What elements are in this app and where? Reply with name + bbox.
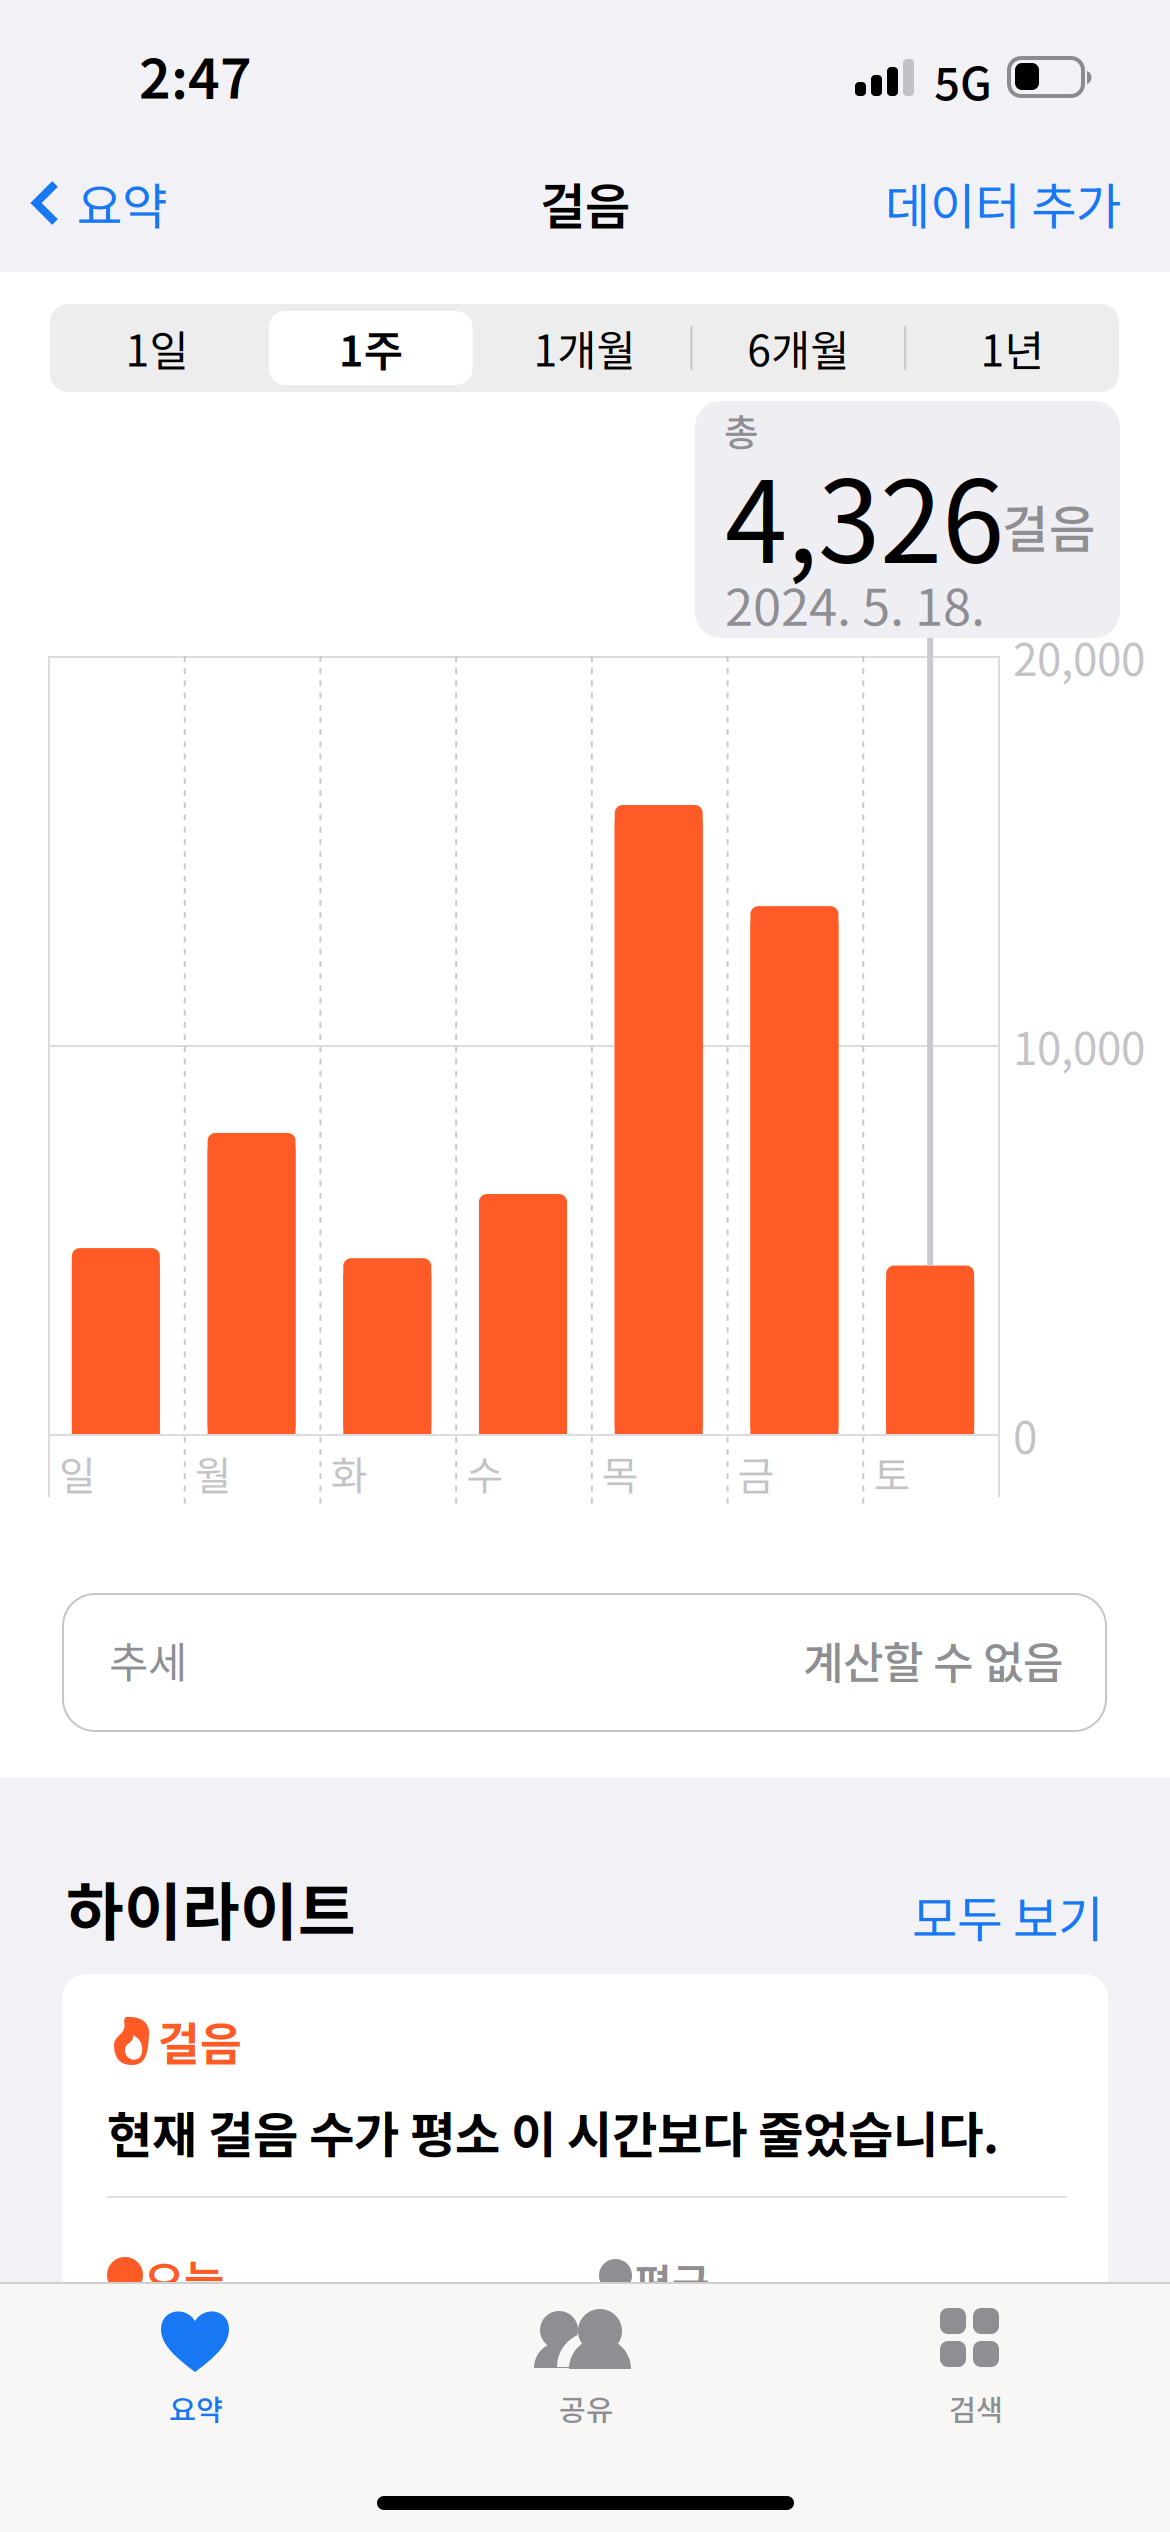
staticText: 1주 <box>339 317 403 379</box>
button[interactable]: 추세 <box>63 1594 1106 1731</box>
staticText: 걸음 <box>158 2008 242 2074</box>
staticText: 공유 <box>559 2387 613 2429</box>
button[interactable]: 데이터 추가 <box>863 148 1169 258</box>
button[interactable]: 요약 <box>0 2282 390 2450</box>
staticText: 검색 <box>949 2387 1003 2429</box>
button[interactable]: 1개월 <box>478 304 691 392</box>
staticText: 화 <box>330 1444 367 1502</box>
staticText: 2024. 5. 18. <box>725 567 985 640</box>
staticText: 하이라이트 <box>66 1862 356 1953</box>
staticText: 평균 <box>634 2251 710 2311</box>
staticText: 모두 보기 <box>912 1880 1103 1951</box>
staticText: 1개월 <box>533 317 635 379</box>
staticText: 금 <box>738 1444 775 1502</box>
staticText: 계산할 수 없음 <box>803 1628 1063 1692</box>
staticText: 5G <box>934 48 992 114</box>
staticText: 걸음 <box>1002 489 1096 562</box>
staticText: 요약 <box>77 167 167 239</box>
staticText: 0 <box>1013 1403 1037 1467</box>
staticText: 10,000 <box>1013 1014 1145 1078</box>
staticText: 일 <box>59 1444 96 1502</box>
button[interactable]: 공유 <box>390 2282 780 2450</box>
staticText: 월 <box>195 1444 232 1502</box>
button[interactable]: 1년 <box>905 304 1119 392</box>
button[interactable]: 모두 보기 <box>900 1868 1115 1963</box>
button[interactable]: 1일 <box>50 304 264 392</box>
staticText: 수 <box>466 1444 503 1502</box>
staticText: 1년 <box>981 317 1044 379</box>
staticText: 총 <box>724 403 758 457</box>
staticText: 요약 <box>169 2387 223 2429</box>
staticText: 토 <box>873 1444 910 1502</box>
button[interactable]: 요약 <box>0 148 189 258</box>
staticText: 목 <box>602 1444 639 1502</box>
button[interactable]: 걸음 <box>62 1974 1108 2314</box>
staticText: 1일 <box>125 317 188 379</box>
staticText: 걸음 <box>540 167 630 239</box>
staticText: 20,000 <box>1013 625 1145 689</box>
staticText: 2:47 <box>139 35 252 114</box>
staticText: 현재 걸음 수가 평소 이 시간보다 줄었습니다. <box>107 2096 999 2167</box>
staticText: 추세 <box>109 1629 187 1691</box>
staticText: 6개월 <box>747 317 849 379</box>
staticText: 4,326 <box>725 433 1004 595</box>
button[interactable]: 검색 <box>780 2282 1170 2450</box>
button[interactable]: 6개월 <box>691 304 905 392</box>
staticText: 데이터 추가 <box>885 167 1121 239</box>
button[interactable]: 1주 <box>264 304 478 392</box>
staticText: 오늘 <box>144 2247 224 2311</box>
